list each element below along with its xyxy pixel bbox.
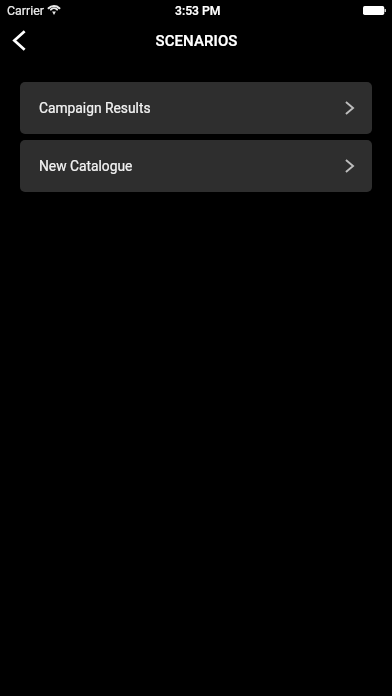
button[interactable]: Back bbox=[0, 20, 38, 60]
staticText: Carrier bbox=[7, 3, 44, 18]
button[interactable]: Campaign Results bbox=[20, 82, 372, 134]
staticText: New Catalogue bbox=[39, 158, 133, 174]
button[interactable]: New Catalogue bbox=[20, 140, 372, 192]
staticText: SCENARIOS bbox=[155, 32, 238, 50]
staticText: Campaign Results bbox=[39, 100, 151, 116]
staticText: 3:53 PM bbox=[175, 4, 221, 18]
